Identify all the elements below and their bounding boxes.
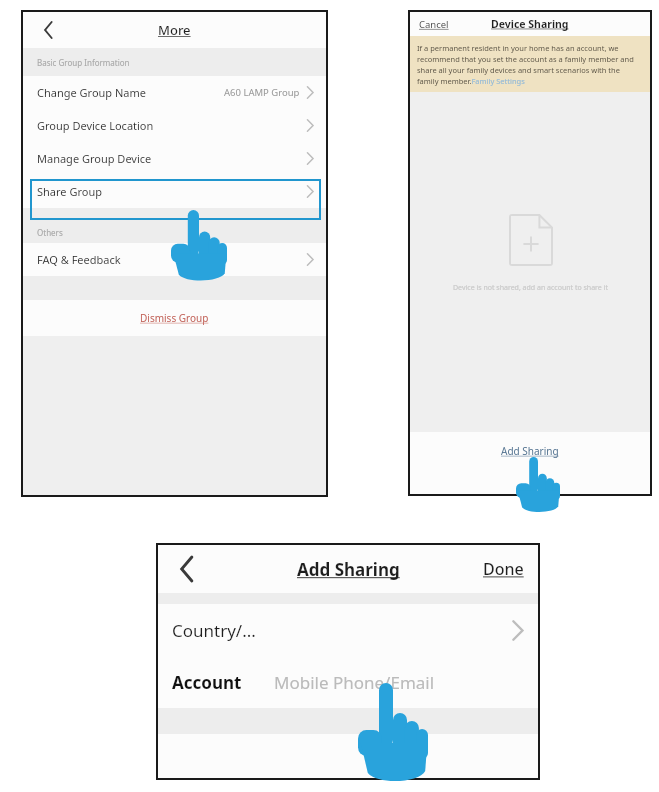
button[interactable]: Share Group bbox=[23, 175, 326, 208]
button[interactable]: Account bbox=[158, 656, 538, 708]
button[interactable]: Back bbox=[37, 19, 59, 41]
button[interactable]: Manage Group Device bbox=[23, 142, 326, 175]
button[interactable]: Group Device Location bbox=[23, 109, 326, 142]
button[interactable]: Change Group Name bbox=[23, 76, 326, 109]
staticText: Mobile Phone/Email bbox=[274, 671, 435, 694]
button[interactable]: Dismiss Group bbox=[136, 307, 213, 329]
staticText: Manage Group Device bbox=[37, 151, 152, 166]
button[interactable]: Add Sharing bbox=[498, 441, 562, 461]
button[interactable]: Country/... bbox=[158, 604, 538, 656]
staticText: If a permanent resident in your home has… bbox=[417, 43, 643, 86]
staticText: Done bbox=[483, 558, 524, 580]
button[interactable]: Cancel bbox=[417, 16, 451, 33]
staticText: Add Sharing bbox=[501, 444, 559, 458]
button[interactable]: Back bbox=[174, 556, 200, 582]
staticText: Change Group Name bbox=[37, 85, 146, 100]
staticText: Device is not shared, add an account to … bbox=[453, 283, 608, 293]
staticText: Others bbox=[37, 227, 63, 238]
staticText: Device Sharing bbox=[491, 17, 569, 31]
staticText: Account bbox=[172, 671, 242, 694]
staticText: Dismiss Group bbox=[140, 311, 209, 325]
staticText: More bbox=[158, 21, 191, 39]
staticText: FAQ & Feedback bbox=[37, 252, 121, 267]
button[interactable]: Done bbox=[481, 556, 526, 582]
staticText: Share Group bbox=[37, 184, 102, 199]
staticText: Basic Group Information bbox=[37, 57, 130, 68]
button[interactable]: FAQ & Feedback bbox=[23, 243, 326, 276]
staticText: Cancel bbox=[419, 18, 449, 31]
staticText: Group Device Location bbox=[37, 118, 154, 133]
staticText: Add Sharing bbox=[297, 558, 400, 581]
staticText: A60 LAMP Group bbox=[224, 86, 300, 99]
staticText: Country/... bbox=[172, 619, 256, 642]
